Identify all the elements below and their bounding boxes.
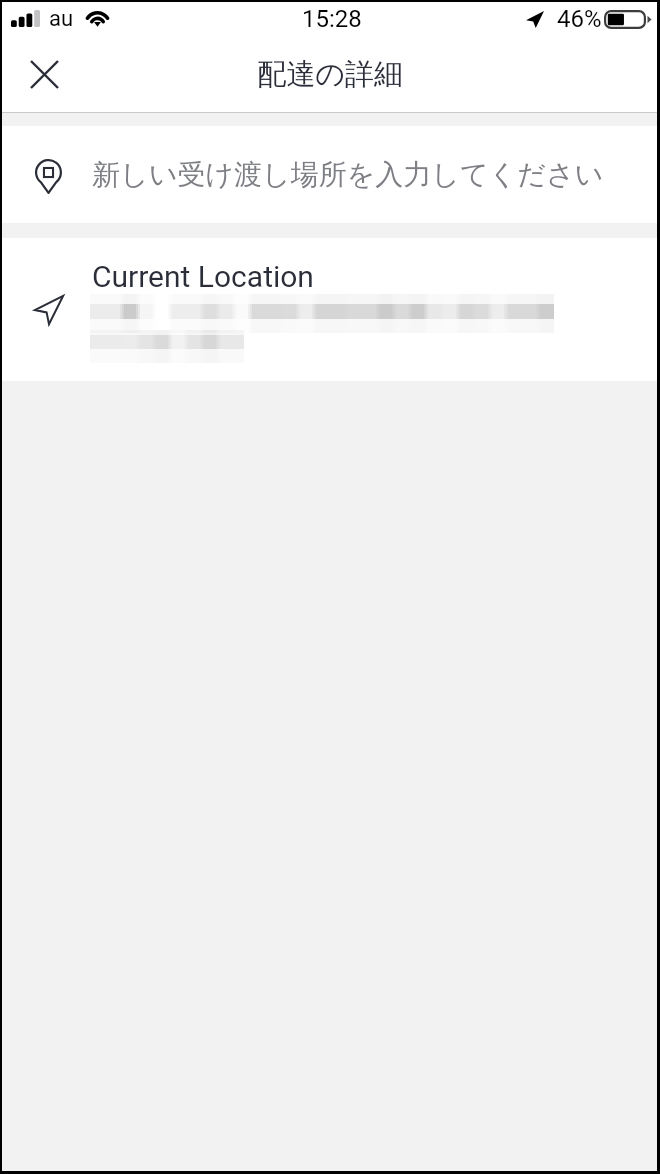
button[interactable]: 新しい受け渡し場所を入力してください [2,126,657,223]
button[interactable]: Close [15,45,73,103]
staticText: 15:28 [302,5,362,33]
staticText: au [49,6,74,32]
staticText: Current Location [92,259,314,294]
staticText: 新しい受け渡し場所を入力してください [92,157,604,192]
staticText: 46% [557,5,602,33]
button[interactable]: Current Location [2,238,657,381]
staticText: 配達の詳細 [257,56,403,93]
